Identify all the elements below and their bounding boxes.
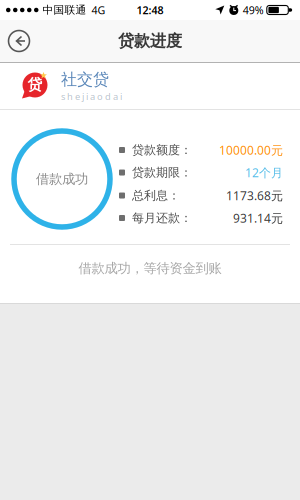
staticText: 社交贷 (61, 69, 109, 89)
staticText: 总利息： (132, 188, 180, 203)
staticText: 贷款进度 (118, 31, 182, 51)
staticText: 12个月 (245, 164, 283, 180)
button[interactable]: 贷 (0, 63, 300, 109)
staticText: 12:48 (136, 3, 163, 17)
button[interactable]: Back (4, 26, 34, 56)
staticText: 借款成功，等待资金到账 (78, 260, 221, 276)
staticText: 借款成功 (36, 171, 88, 187)
staticText: 中国联通 (42, 3, 86, 16)
staticText: 贷 (27, 75, 42, 93)
staticText: 贷款期限： (132, 165, 192, 180)
staticText: 10000.00元 (219, 142, 283, 158)
staticText: 每月还款： (132, 211, 192, 225)
staticText: 4G (91, 3, 105, 17)
staticText: 贷款额度： (132, 143, 192, 157)
staticText: 49% (243, 3, 264, 17)
staticText: s h e j i a o d a i (61, 90, 122, 102)
staticText: 1173.68元 (226, 187, 283, 203)
staticText: 931.14元 (233, 210, 283, 226)
